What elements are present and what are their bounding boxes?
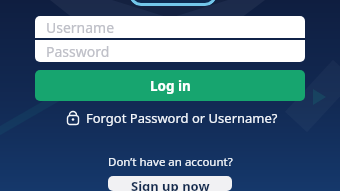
staticText: Password: [46, 42, 110, 61]
button[interactable]: Forgot Password or Username?: [66, 109, 278, 127]
staticText: Sign up now: [131, 177, 210, 191]
button[interactable]: [129, 0, 217, 6]
staticText: Log in: [150, 77, 191, 95]
button[interactable]: Username: [35, 16, 305, 38]
staticText: Don’t have an account?: [108, 154, 233, 170]
button[interactable]: Sign up now: [108, 176, 232, 191]
button[interactable]: Password: [35, 40, 305, 62]
button[interactable]: Log in: [35, 70, 305, 101]
staticText: Forgot Password or Username?: [86, 109, 278, 127]
staticText: Username: [46, 18, 115, 37]
